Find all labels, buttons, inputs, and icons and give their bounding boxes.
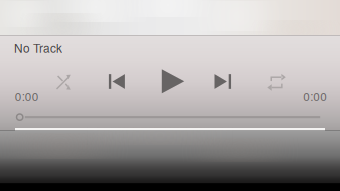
button[interactable]: No Track <box>14 40 164 54</box>
button[interactable]: Play <box>0 0 340 191</box>
staticText: 0:00 <box>303 88 327 104</box>
staticText: No Track <box>14 39 62 56</box>
button[interactable]: Playback position <box>0 0 340 191</box>
button[interactable]: Next track <box>0 0 340 191</box>
button[interactable]: Repeat <box>0 0 340 191</box>
staticText: 0:00 <box>15 88 39 104</box>
button[interactable]: Previous track <box>0 0 340 191</box>
button[interactable]: Shuffle <box>0 0 340 191</box>
